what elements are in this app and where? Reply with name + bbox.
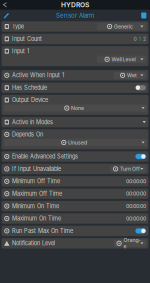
button[interactable]: Turn Off xyxy=(110,165,146,172)
staticText: Depends On xyxy=(12,131,43,138)
button[interactable]: Well Level xyxy=(97,56,146,63)
staticText: Active When Input 1 xyxy=(12,72,64,79)
button[interactable]: Orange xyxy=(114,240,146,247)
button[interactable]: Status xyxy=(140,11,148,20)
staticText: Maximum Off Time xyxy=(12,190,62,197)
staticText: 2 xyxy=(143,36,146,42)
staticText: 00:00:00 xyxy=(126,215,146,222)
staticText: Run Past Max On Time xyxy=(12,227,73,234)
staticText: 00:00:00 xyxy=(126,191,146,197)
staticText: Well Level xyxy=(111,56,135,62)
staticText: None xyxy=(71,105,84,111)
button[interactable]: Enable Advanced Settings xyxy=(1,151,148,162)
button[interactable]: None xyxy=(4,104,147,112)
button[interactable]: Minimum Off Time xyxy=(1,176,148,186)
button[interactable]: Notification Level xyxy=(1,238,148,248)
staticText: Input 1 xyxy=(12,48,29,55)
staticText: Maximum On Time xyxy=(12,215,61,222)
button[interactable]: Has Schedule xyxy=(1,82,148,93)
staticText: Turn Off xyxy=(120,166,140,172)
button[interactable]: Maximum Off Time xyxy=(1,188,148,199)
staticText: Active in Modes xyxy=(12,119,53,125)
staticText: Minimum On Time xyxy=(12,203,59,209)
button[interactable]: Type xyxy=(1,21,148,32)
staticText: Input Count xyxy=(12,35,42,42)
staticText: HYDROS xyxy=(61,1,89,9)
button[interactable]: Output Device xyxy=(1,95,148,115)
button[interactable]: Unused xyxy=(4,139,147,146)
staticText: Minimum Off Time xyxy=(12,178,60,185)
button[interactable]: If Input Unavailable xyxy=(1,164,148,174)
staticText: Has Schedule xyxy=(12,84,47,91)
staticText: Type xyxy=(12,23,24,30)
button[interactable]: Run Past Max On Time xyxy=(1,226,148,236)
staticText: 0 xyxy=(133,36,136,42)
button[interactable]: Wet xyxy=(114,72,146,79)
staticText: 00:00:00 xyxy=(126,203,146,209)
button[interactable]: Back xyxy=(0,0,9,10)
button[interactable]: Input 1 xyxy=(1,46,148,66)
button[interactable]: Depends On xyxy=(1,129,148,149)
staticText: Wet xyxy=(127,72,137,78)
staticText: 1 xyxy=(139,36,141,42)
staticText: Unused xyxy=(68,139,87,146)
button[interactable]: Minimum On Time xyxy=(1,201,148,211)
staticText: Orange xyxy=(123,237,140,250)
staticText: Enable Advanced Settings xyxy=(12,153,78,160)
button[interactable]: Active When Input 1 xyxy=(1,70,148,80)
button[interactable]: Input Count xyxy=(1,34,148,44)
button[interactable]: Generic xyxy=(97,23,146,30)
staticText: 00:00:00 xyxy=(126,178,146,184)
button[interactable]: Maximum On Time xyxy=(1,213,148,224)
button[interactable]: Active in Modes xyxy=(1,117,148,127)
staticText: Sensor Alarm xyxy=(56,12,94,19)
staticText: Output Device xyxy=(12,97,48,103)
button[interactable]: Edit xyxy=(2,11,10,20)
staticText: If Input Unavailable xyxy=(12,165,61,172)
staticText: Generic xyxy=(114,23,133,30)
staticText: Notification Level xyxy=(12,240,55,247)
